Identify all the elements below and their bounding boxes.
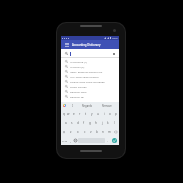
staticText: z	[70, 130, 72, 134]
button[interactable]: ACP: book value investm	[61, 74, 119, 79]
button[interactable]: z	[67, 127, 74, 136]
button[interactable]: o	[107, 109, 113, 118]
staticText: i	[104, 112, 105, 116]
staticText: u	[97, 112, 99, 116]
staticText: I	[72, 104, 73, 108]
staticText: n	[102, 130, 104, 134]
button[interactable]: t	[83, 109, 89, 118]
staticText: t	[85, 112, 87, 116]
button[interactable]: f	[81, 118, 87, 127]
button[interactable]: Salary insuran	[61, 84, 119, 89]
button[interactable]: Emoji	[73, 136, 78, 145]
button[interactable]: I	[70, 102, 75, 109]
staticText: v	[90, 130, 92, 134]
staticText: ACP: book value investm	[70, 75, 99, 78]
button[interactable]: r	[77, 109, 83, 118]
button[interactable]: y	[89, 109, 95, 118]
button[interactable]: .	[105, 136, 110, 145]
button[interactable]: Clear search	[112, 52, 116, 56]
staticText: p	[115, 112, 117, 116]
button[interactable]: b	[94, 127, 100, 136]
staticText: s	[71, 121, 73, 125]
button[interactable]: Accounting (1)	[61, 59, 119, 64]
button[interactable]: Google	[63, 104, 66, 107]
staticText: x	[77, 130, 79, 134]
staticText: h	[95, 121, 97, 125]
button[interactable]: x	[74, 127, 81, 136]
staticText: Decision varia	[70, 90, 87, 93]
button[interactable]: p	[113, 109, 119, 118]
button[interactable]: Backspace	[112, 127, 119, 136]
staticText: j	[102, 121, 103, 125]
staticText: y	[91, 112, 93, 116]
button[interactable]: d	[75, 118, 81, 127]
button[interactable]: Decision varia	[61, 89, 119, 94]
staticText: m	[108, 130, 111, 134]
staticText: Wealth: book value mortgage	[70, 80, 105, 83]
staticText: f	[83, 121, 85, 125]
staticText: g	[89, 121, 91, 125]
button[interactable]: k	[105, 118, 111, 127]
button[interactable]: ?123	[62, 136, 68, 145]
button[interactable]: v	[88, 127, 94, 136]
staticText: w	[67, 112, 70, 116]
button[interactable]: s	[69, 118, 75, 127]
staticText: b	[96, 130, 98, 134]
staticText: Accounting (1)	[70, 60, 87, 63]
staticText: Remove	[102, 104, 112, 108]
staticText: ABBA: Revenue amount mo	[70, 70, 103, 73]
button[interactable]: u	[95, 109, 101, 118]
button[interactable]: Regards	[77, 102, 97, 109]
staticText: Regards	[82, 104, 92, 108]
staticText: ?123	[62, 139, 68, 142]
button[interactable]: a	[63, 118, 69, 127]
staticText: a	[65, 121, 67, 125]
button[interactable]: w	[66, 109, 71, 118]
button[interactable]: q	[61, 109, 66, 118]
staticText: c	[84, 130, 86, 134]
button[interactable]: l	[111, 118, 117, 127]
button[interactable]: Wealth: book value mortgage	[61, 79, 119, 84]
staticText: e	[73, 112, 75, 116]
staticText: Accounting Dictionary	[72, 43, 101, 47]
staticText: d	[77, 121, 79, 125]
staticText: Decision sal	[70, 95, 84, 98]
button[interactable]: c	[81, 127, 88, 136]
staticText: o	[109, 112, 111, 116]
button[interactable]: Decision sal	[61, 94, 119, 99]
button[interactable]: Open navigation menu	[61, 40, 72, 49]
staticText: r	[79, 112, 81, 116]
button[interactable]: g	[87, 118, 93, 127]
staticText: 10:15	[112, 37, 118, 40]
button[interactable]: m	[106, 127, 112, 136]
button[interactable]: e	[71, 109, 77, 118]
button[interactable]: ,	[68, 136, 73, 145]
button[interactable]: ABBA: Revenue amount mo	[61, 69, 119, 74]
staticText: Accounts (2)	[70, 65, 85, 68]
button[interactable]: j	[99, 118, 105, 127]
button[interactable]: n	[100, 127, 106, 136]
button[interactable]: Remove	[97, 102, 117, 109]
staticText: k	[107, 121, 109, 125]
staticText: ,	[70, 138, 71, 143]
staticText: Salary insuran	[70, 85, 87, 88]
button[interactable]: Search	[112, 138, 117, 143]
button[interactable]: h	[93, 118, 99, 127]
button[interactable]: Accounts (2)	[61, 64, 119, 69]
staticText: .	[107, 138, 108, 143]
button[interactable]: Shift	[61, 127, 67, 136]
button[interactable]: i	[101, 109, 107, 118]
staticText: q	[63, 112, 65, 116]
staticText: l	[114, 121, 115, 125]
